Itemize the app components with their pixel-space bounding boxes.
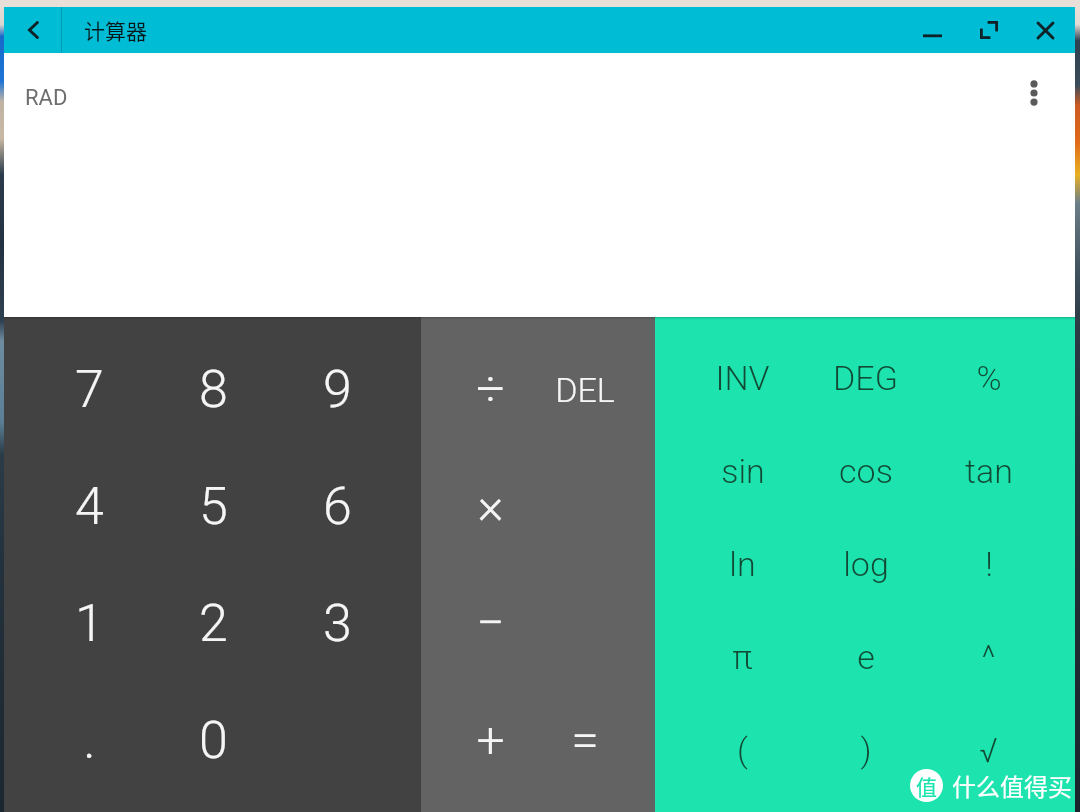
button[interactable]: 3 <box>275 565 399 682</box>
button[interactable]: DEG <box>804 331 927 424</box>
staticText: . <box>83 710 96 771</box>
button[interactable]: INV <box>681 331 804 424</box>
button[interactable]: 9 <box>275 331 399 448</box>
staticText: log <box>843 544 889 584</box>
button[interactable]: √ <box>927 703 1050 796</box>
button[interactable]: Maximize <box>960 7 1018 53</box>
staticText: ) <box>860 730 872 770</box>
button[interactable]: × <box>443 448 537 565</box>
staticText: INV <box>715 358 770 398</box>
button[interactable]: ÷ <box>443 331 537 448</box>
button[interactable]: ( <box>681 703 804 796</box>
staticText: + <box>476 711 505 770</box>
staticText: ÷ <box>476 360 505 419</box>
staticText: × <box>477 477 504 536</box>
button[interactable]: ! <box>927 517 1050 610</box>
staticText: 1 <box>75 593 104 654</box>
staticText: 计算器 <box>84 15 147 45</box>
button[interactable]: Back <box>4 7 61 53</box>
button[interactable]: DEL <box>537 331 632 448</box>
staticText: % <box>976 358 1002 398</box>
staticText: 5 <box>199 476 228 537</box>
staticText: ( <box>737 730 748 770</box>
button[interactable]: + <box>443 682 537 799</box>
button[interactable]: . <box>27 682 151 799</box>
staticText: DEL <box>555 370 615 410</box>
staticText: sin <box>721 451 765 491</box>
button[interactable]: Minimize <box>903 7 961 53</box>
staticText: RAD <box>25 85 68 111</box>
staticText: 值 <box>916 771 937 801</box>
button[interactable]: sin <box>681 424 804 517</box>
button[interactable]: 7 <box>27 331 151 448</box>
staticText: e <box>857 637 875 677</box>
button[interactable]: cos <box>804 424 927 517</box>
button[interactable]: ) <box>804 703 927 796</box>
staticText: ln <box>729 544 756 584</box>
staticText: cos <box>839 451 893 491</box>
staticText: 0 <box>199 710 228 771</box>
button[interactable]: = <box>537 682 632 799</box>
staticText: 6 <box>323 476 352 537</box>
button[interactable]: 8 <box>151 331 275 448</box>
button[interactable]: ^ <box>927 610 1050 703</box>
staticText: 8 <box>199 359 228 420</box>
button[interactable]: π <box>681 610 804 703</box>
button[interactable]: − <box>443 565 537 682</box>
button[interactable]: 6 <box>275 448 399 565</box>
staticText: π <box>732 637 753 677</box>
button[interactable]: 0 <box>151 682 275 799</box>
button[interactable]: 2 <box>151 565 275 682</box>
staticText: DEG <box>833 358 898 398</box>
button[interactable]: 1 <box>27 565 151 682</box>
button[interactable]: log <box>804 517 927 610</box>
button[interactable]: 4 <box>27 448 151 565</box>
staticText: = <box>571 711 599 770</box>
staticText: 7 <box>75 359 104 420</box>
staticText: 3 <box>323 593 352 654</box>
button[interactable]: e <box>804 610 927 703</box>
staticText: √ <box>979 730 998 770</box>
button[interactable]: % <box>927 331 1050 424</box>
staticText: ! <box>985 544 993 584</box>
staticText: 2 <box>199 593 228 654</box>
button[interactable]: tan <box>927 424 1050 517</box>
button[interactable]: Close <box>1016 7 1075 53</box>
button[interactable]: 5 <box>151 448 275 565</box>
staticText: ^ <box>981 637 996 677</box>
staticText: 4 <box>75 476 104 537</box>
staticText: − <box>476 594 505 653</box>
staticText: 什么值得买 <box>952 768 1072 803</box>
staticText: 9 <box>323 359 352 420</box>
button[interactable]: More options <box>1010 69 1058 117</box>
button[interactable]: ln <box>681 517 804 610</box>
staticText: tan <box>965 451 1013 491</box>
